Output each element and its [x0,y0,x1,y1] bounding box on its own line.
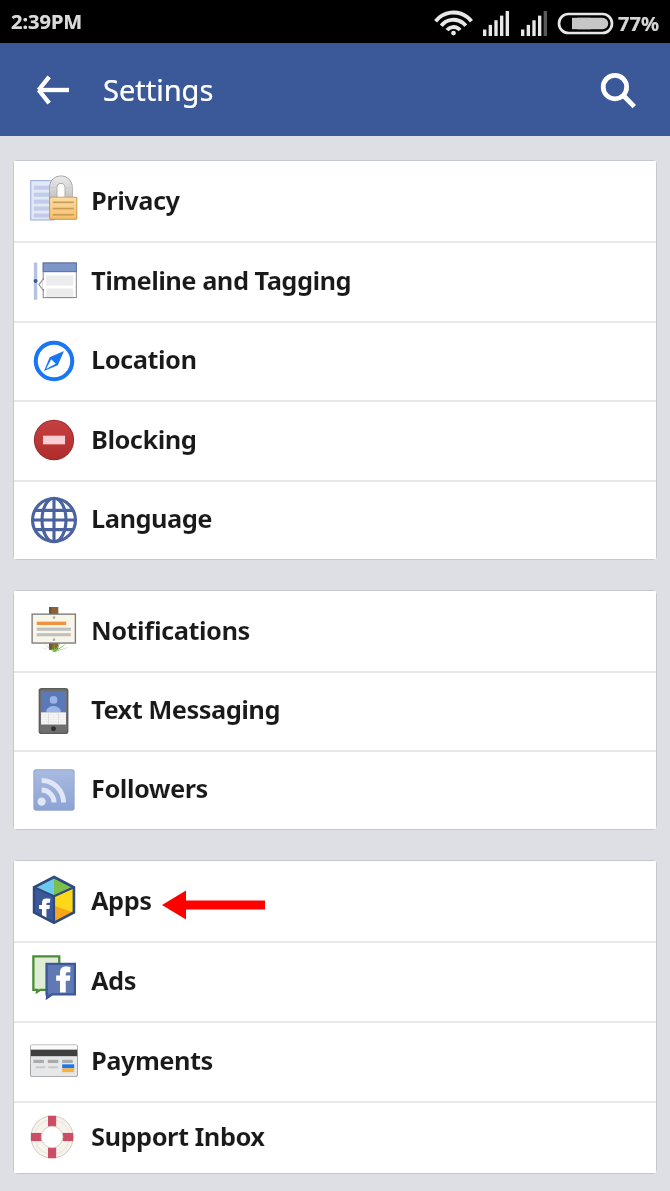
staticText: Notifications [91,613,250,648]
staticText: Blocking [91,422,197,457]
button[interactable]: Payments [14,1021,656,1101]
button[interactable]: Timeline and Tagging [14,241,656,321]
staticText: Support Inbox [91,1119,265,1154]
staticText: Apps [91,883,152,918]
button[interactable]: Search [589,60,649,120]
button[interactable]: Text Messaging [14,671,656,750]
button[interactable]: Blocking [14,400,656,480]
staticText: Followers [91,771,208,806]
button[interactable]: Support Inbox [14,1101,656,1173]
button[interactable]: Location [14,321,656,400]
button[interactable]: Followers [14,750,656,829]
staticText: Privacy [91,183,180,218]
button[interactable]: Language [14,480,656,559]
button[interactable]: Back [22,59,84,121]
staticText: Payments [91,1043,213,1078]
staticText: Settings [103,70,214,109]
staticText: Language [91,501,213,536]
button[interactable]: Apps [14,861,656,941]
button[interactable]: Privacy [14,161,656,241]
staticText: Text Messaging [91,692,280,727]
button[interactable]: Notifications [14,591,656,671]
staticText: 77% [618,10,659,37]
staticText: Location [91,342,197,377]
button[interactable]: Ads [14,941,656,1021]
staticText: 2:39PM [11,8,83,35]
staticText: Ads [91,963,136,998]
staticText: Timeline and Tagging [91,263,352,298]
